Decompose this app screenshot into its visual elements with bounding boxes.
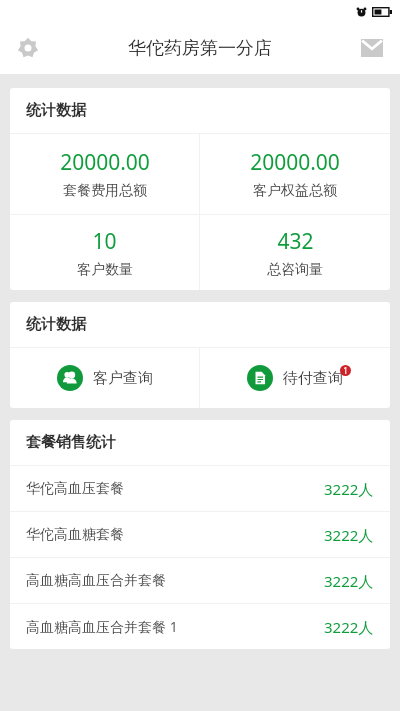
- staticText: 3222人: [324, 479, 374, 499]
- button[interactable]: 华佗高血压套餐: [10, 466, 390, 511]
- staticText: 10: [92, 227, 117, 256]
- button[interactable]: 高血糖高血压合并套餐: [10, 558, 390, 603]
- button[interactable]: Messages: [352, 28, 392, 68]
- staticText: 20000.00: [250, 148, 340, 177]
- staticText: 3222人: [324, 571, 374, 591]
- staticText: 3222人: [324, 617, 374, 637]
- staticText: 432: [277, 227, 314, 256]
- staticText: 3222人: [324, 525, 374, 545]
- button[interactable]: 20000.00: [200, 134, 390, 214]
- staticText: 套餐费用总额: [63, 182, 147, 200]
- staticText: 高血糖高血压合并套餐 1: [26, 617, 178, 636]
- staticText: 总咨询量: [267, 261, 323, 279]
- staticText: 1: [343, 365, 348, 376]
- button[interactable]: 10: [10, 215, 199, 290]
- staticText: 高血糖高血压合并套餐: [26, 572, 166, 590]
- staticText: 华佗高血压套餐: [26, 480, 124, 498]
- button[interactable]: 华佗高血糖套餐: [10, 512, 390, 557]
- staticText: 待付查询: [283, 369, 343, 388]
- staticText: 客户查询: [93, 369, 153, 388]
- staticText: 套餐销售统计: [26, 433, 116, 452]
- staticText: 统计数据: [26, 315, 86, 334]
- staticText: 统计数据: [26, 101, 86, 120]
- button[interactable]: 待付查询: [200, 348, 390, 408]
- button[interactable]: 20000.00: [10, 134, 199, 214]
- staticText: 20000.00: [60, 148, 150, 177]
- staticText: 华佗药房第一分店: [128, 37, 272, 60]
- button[interactable]: 客户查询: [10, 348, 199, 408]
- button[interactable]: 高血糖高血压合并套餐 1: [10, 604, 390, 649]
- button[interactable]: 432: [200, 215, 390, 290]
- button[interactable]: Settings: [8, 28, 48, 68]
- staticText: 客户数量: [77, 261, 133, 279]
- staticText: 客户权益总额: [253, 182, 337, 200]
- staticText: 华佗高血糖套餐: [26, 526, 124, 544]
